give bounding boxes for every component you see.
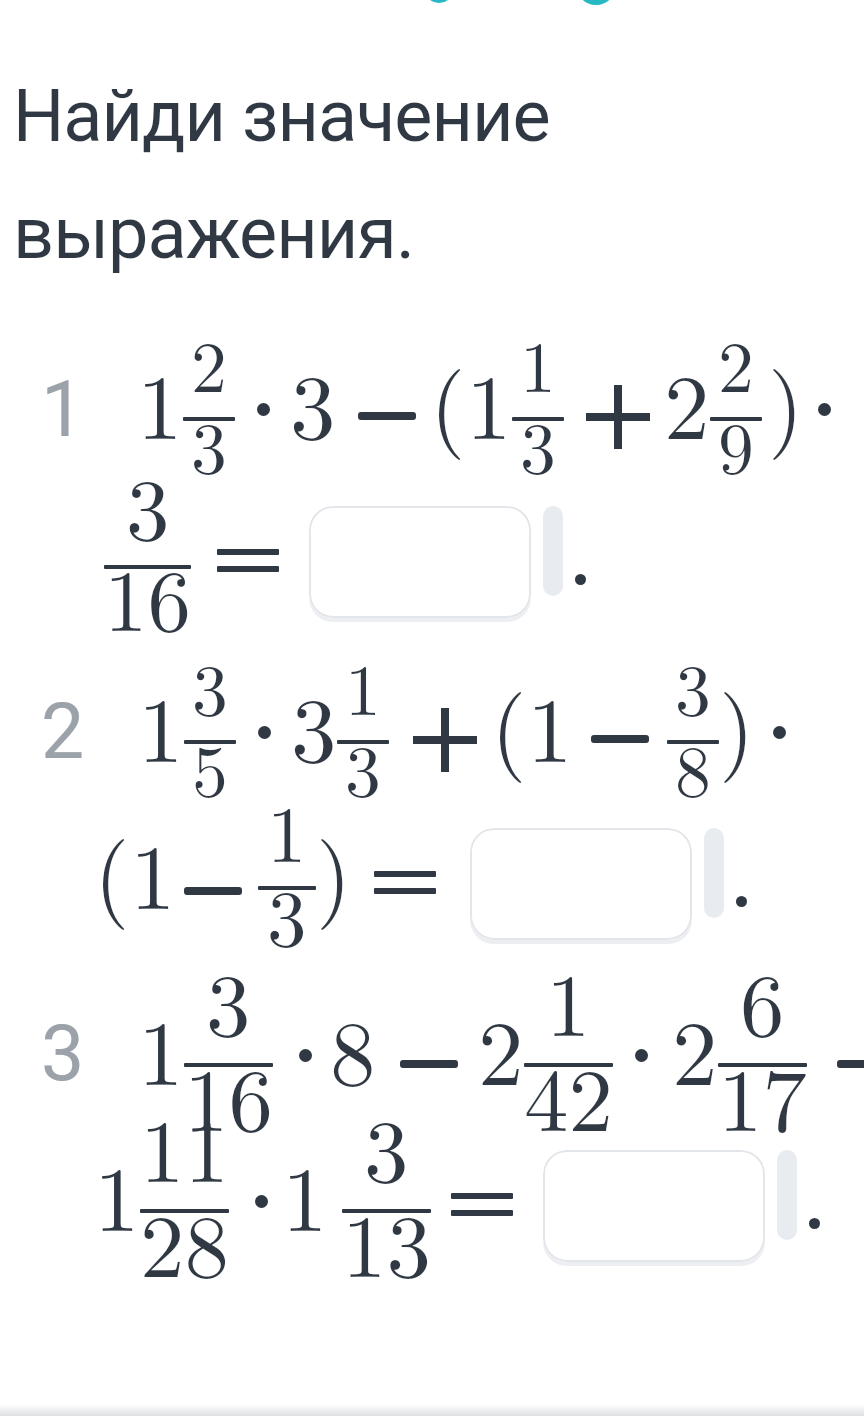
staticText: ( bbox=[430, 334, 466, 463]
staticText: 2 bbox=[478, 982, 524, 1111]
button[interactable] bbox=[704, 828, 724, 918]
staticText: 5 bbox=[192, 715, 228, 817]
staticText: 1 bbox=[527, 659, 573, 788]
button[interactable] bbox=[543, 506, 563, 596]
staticText: 8 bbox=[330, 982, 376, 1111]
staticText: 2 bbox=[718, 311, 754, 413]
staticText: 1 bbox=[267, 773, 307, 885]
staticText: 8 bbox=[675, 715, 711, 817]
staticText: 3 bbox=[364, 1082, 409, 1208]
staticText: 3 bbox=[675, 634, 711, 736]
staticText: 1 bbox=[130, 806, 176, 935]
staticText: 1 bbox=[282, 1128, 328, 1257]
staticText: ) bbox=[316, 804, 352, 933]
staticText: 1 bbox=[138, 982, 184, 1111]
staticText: 1 bbox=[466, 336, 512, 465]
staticText: 3 bbox=[41, 1009, 81, 1099]
staticText: 3 bbox=[126, 442, 170, 565]
staticText: ) bbox=[719, 657, 755, 786]
staticText: 13 bbox=[342, 1177, 431, 1302]
staticText: 16 bbox=[104, 533, 191, 656]
staticText: 3 bbox=[206, 936, 251, 1062]
staticText: 1 bbox=[345, 634, 381, 736]
staticText: 3 bbox=[520, 392, 556, 494]
staticText: 28 bbox=[140, 1177, 229, 1302]
staticText: 1 bbox=[41, 365, 81, 455]
staticText: 1 bbox=[94, 1128, 140, 1257]
staticText: 3 bbox=[267, 857, 307, 969]
staticText: 1 bbox=[138, 659, 184, 788]
staticText: 2 bbox=[664, 336, 710, 465]
staticText: 3 bbox=[345, 715, 381, 817]
staticText: ) bbox=[768, 334, 804, 463]
staticText: 16 bbox=[184, 1031, 273, 1156]
staticText: Найди значение выражения. bbox=[13, 74, 550, 276]
staticText: 2 bbox=[191, 311, 227, 413]
staticText: 1 bbox=[137, 336, 183, 465]
staticText: 9 bbox=[718, 392, 754, 494]
staticText: 6 bbox=[740, 936, 785, 1062]
button[interactable] bbox=[777, 1150, 797, 1240]
staticText: 1 bbox=[546, 936, 591, 1062]
staticText: 3 bbox=[191, 392, 227, 494]
staticText: 42 bbox=[524, 1031, 613, 1156]
staticText: 2 bbox=[672, 982, 718, 1111]
staticText: 11 bbox=[140, 1082, 229, 1208]
staticText: 3 bbox=[291, 659, 337, 788]
button[interactable] bbox=[470, 828, 692, 940]
staticText: 1 bbox=[520, 311, 556, 413]
button[interactable] bbox=[309, 506, 531, 618]
staticText: ( bbox=[94, 804, 130, 933]
button[interactable] bbox=[543, 1150, 765, 1262]
staticText: 3 bbox=[290, 336, 336, 465]
staticText: 2 bbox=[41, 687, 81, 777]
staticText: ( bbox=[491, 657, 527, 786]
staticText: 17 bbox=[718, 1031, 807, 1156]
staticText: 3 bbox=[192, 634, 228, 736]
